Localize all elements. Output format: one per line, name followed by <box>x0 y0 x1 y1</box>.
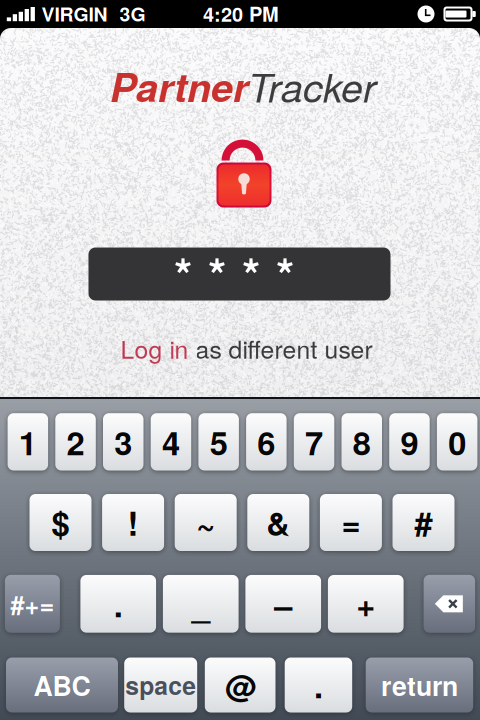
staticText: = <box>341 499 360 546</box>
staticText: _ <box>192 580 210 627</box>
staticText: & <box>266 499 290 546</box>
staticText: 8 <box>353 418 371 465</box>
staticText: Log in <box>120 330 195 366</box>
staticText: $ <box>51 499 69 546</box>
staticText: 5 <box>210 418 228 465</box>
button[interactable]: space <box>124 657 197 712</box>
button[interactable]: 2 <box>55 413 96 470</box>
staticText: 3 <box>114 418 132 465</box>
staticText: Tracker <box>248 58 376 114</box>
button[interactable]: = <box>320 494 382 551</box>
button[interactable]: 0 <box>437 413 477 470</box>
staticText: # <box>414 499 432 546</box>
staticText: #+= <box>10 586 54 622</box>
button[interactable]: @ <box>205 657 275 712</box>
staticText: @ <box>225 662 256 708</box>
staticText: 0 <box>448 418 466 465</box>
button[interactable]: 8 <box>341 413 382 470</box>
staticText: + <box>356 580 375 627</box>
staticText: 7 <box>305 418 323 465</box>
button[interactable]: 7 <box>294 413 334 470</box>
staticText: . <box>314 662 323 708</box>
staticText: 2 <box>66 418 84 465</box>
button[interactable]: . <box>285 657 352 712</box>
button[interactable]: & <box>247 494 309 551</box>
staticText: 3G <box>119 0 145 27</box>
staticText: . <box>114 580 123 627</box>
button[interactable]: + <box>328 575 404 633</box>
button[interactable]: . <box>80 575 156 633</box>
button[interactable]: – <box>245 575 321 633</box>
staticText: 4:20 PM <box>203 0 279 28</box>
button[interactable]: return <box>366 657 473 712</box>
staticText: 4 <box>162 418 180 465</box>
staticText: space <box>125 667 196 703</box>
button[interactable]: 4 <box>151 413 191 470</box>
button[interactable]: 5 <box>198 413 239 470</box>
button[interactable]: 3 <box>103 413 143 470</box>
staticText: ! <box>128 499 139 546</box>
staticText: ABC <box>33 666 90 704</box>
staticText: 1 <box>19 418 37 465</box>
button[interactable]: 1 <box>8 413 48 470</box>
staticText: Partner <box>110 58 248 114</box>
staticText: 6 <box>257 418 275 465</box>
staticText: – <box>274 580 292 627</box>
button[interactable]: $ <box>29 494 91 551</box>
staticText: 9 <box>400 418 418 465</box>
button[interactable]: _ <box>163 575 239 633</box>
button[interactable]: 6 <box>246 413 287 470</box>
button[interactable]: 9 <box>389 413 430 470</box>
button[interactable]: ABC <box>6 657 118 712</box>
staticText: as different user <box>195 330 372 366</box>
staticText: ~ <box>196 499 215 546</box>
staticText: return <box>381 666 458 704</box>
button[interactable] <box>424 575 475 633</box>
button[interactable]: ! <box>102 494 164 551</box>
button[interactable]: ~ <box>175 494 237 551</box>
staticText: VIRGIN <box>41 0 107 27</box>
button[interactable]: # <box>392 494 454 551</box>
button[interactable]: #+= <box>5 575 60 633</box>
